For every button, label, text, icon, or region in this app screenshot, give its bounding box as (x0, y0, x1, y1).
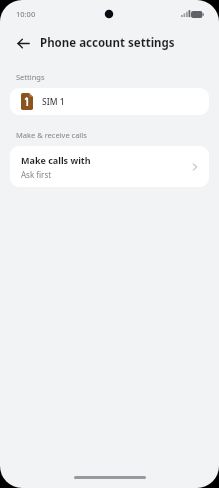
staticText: Phone account settings (40, 35, 175, 51)
staticText: Make calls with (21, 154, 91, 166)
staticText: Ask first (21, 169, 52, 180)
staticText: Make & receive calls (16, 130, 87, 140)
staticText: Settings (16, 72, 45, 82)
button[interactable]: Make calls with (10, 146, 209, 187)
button[interactable]: Back (11, 31, 35, 55)
staticText: SIM 1 (42, 96, 65, 108)
button[interactable]: SIM 1 (10, 88, 209, 115)
staticText: 10:00 (16, 9, 36, 19)
other: Open (189, 161, 201, 173)
